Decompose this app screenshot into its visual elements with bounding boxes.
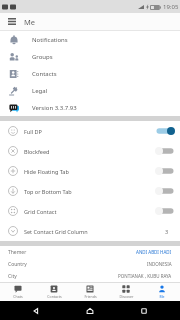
staticText: 3 [165, 228, 169, 235]
button[interactable]: Themer [0, 246, 180, 258]
button[interactable]: Version 3.3.7.93 [0, 99, 180, 116]
button[interactable]: Legal [0, 82, 180, 99]
staticText: Version 3.3.7.93 [32, 104, 77, 112]
staticText: Discover [119, 294, 134, 299]
button[interactable]: Contacts [36, 283, 72, 301]
button[interactable]: Contacts [0, 65, 180, 82]
staticText: Friends [84, 294, 97, 299]
button[interactable]: Country [0, 258, 180, 270]
staticText: Full DP [24, 128, 155, 135]
button[interactable]: Groups [0, 48, 180, 65]
button[interactable]: Set Contact Grid Column [0, 221, 180, 241]
staticText: Set Contact Grid Column [24, 228, 165, 235]
staticText: Top or Bottom Tab [24, 188, 155, 195]
button[interactable]: Recent apps [108, 301, 180, 320]
button[interactable]: Chats [0, 283, 36, 301]
button[interactable]: Grid Contact [0, 201, 180, 221]
button[interactable]: Blockfeed [0, 141, 180, 161]
staticText: Hide Floating Tab [24, 168, 155, 175]
button[interactable]: City [0, 270, 180, 282]
button[interactable]: Top or Bottom Tab [0, 181, 180, 201]
staticText: Contacts [32, 70, 57, 78]
staticText: Notifications [32, 36, 68, 44]
staticText: Country [8, 261, 27, 268]
staticText: Me [159, 294, 165, 299]
button[interactable]: Full DP [0, 121, 180, 141]
staticText: INDONESIA [147, 261, 172, 267]
button[interactable]: Notifications [0, 31, 180, 48]
staticText: Legal [32, 87, 48, 95]
staticText: ANDI ABDI HADI [136, 249, 172, 255]
staticText: Themer [8, 249, 27, 256]
button[interactable]: Home [78, 301, 102, 320]
button[interactable]: Open navigation menu [0, 13, 24, 30]
button[interactable]: Back [0, 301, 72, 320]
staticText: PONTIANAK , KUBU RAYA [118, 273, 172, 279]
staticText: Groups [32, 53, 53, 61]
staticText: City [8, 273, 17, 280]
staticText: Chats [13, 294, 23, 299]
staticText: 19:05 [163, 3, 179, 11]
button[interactable]: Hide Floating Tab [0, 161, 180, 181]
staticText: Blockfeed [24, 148, 155, 155]
button[interactable]: Me [144, 283, 180, 301]
staticText: Grid Contact [24, 208, 155, 215]
button[interactable]: Discover [108, 283, 144, 301]
button[interactable]: Friends [72, 283, 108, 301]
staticText: Me [24, 17, 36, 27]
staticText: Contacts [47, 294, 62, 299]
